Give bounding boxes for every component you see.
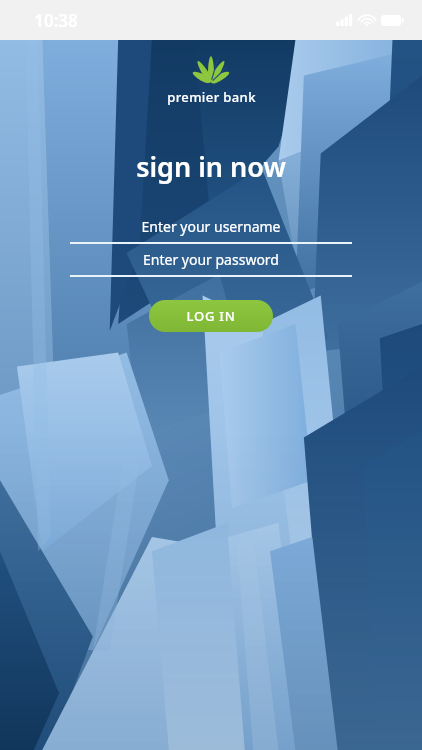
button[interactable]: Enter your password xyxy=(70,246,352,277)
button[interactable]: Enter your username xyxy=(70,213,352,244)
staticText: Enter your username xyxy=(141,217,281,236)
staticText: LOG IN xyxy=(186,307,236,325)
staticText: Enter your password xyxy=(143,250,279,269)
button[interactable]: LOG IN xyxy=(149,300,273,332)
staticText: 10:38 xyxy=(34,9,78,32)
staticText: sign in now xyxy=(136,148,286,185)
staticText: premier bank xyxy=(167,88,256,106)
